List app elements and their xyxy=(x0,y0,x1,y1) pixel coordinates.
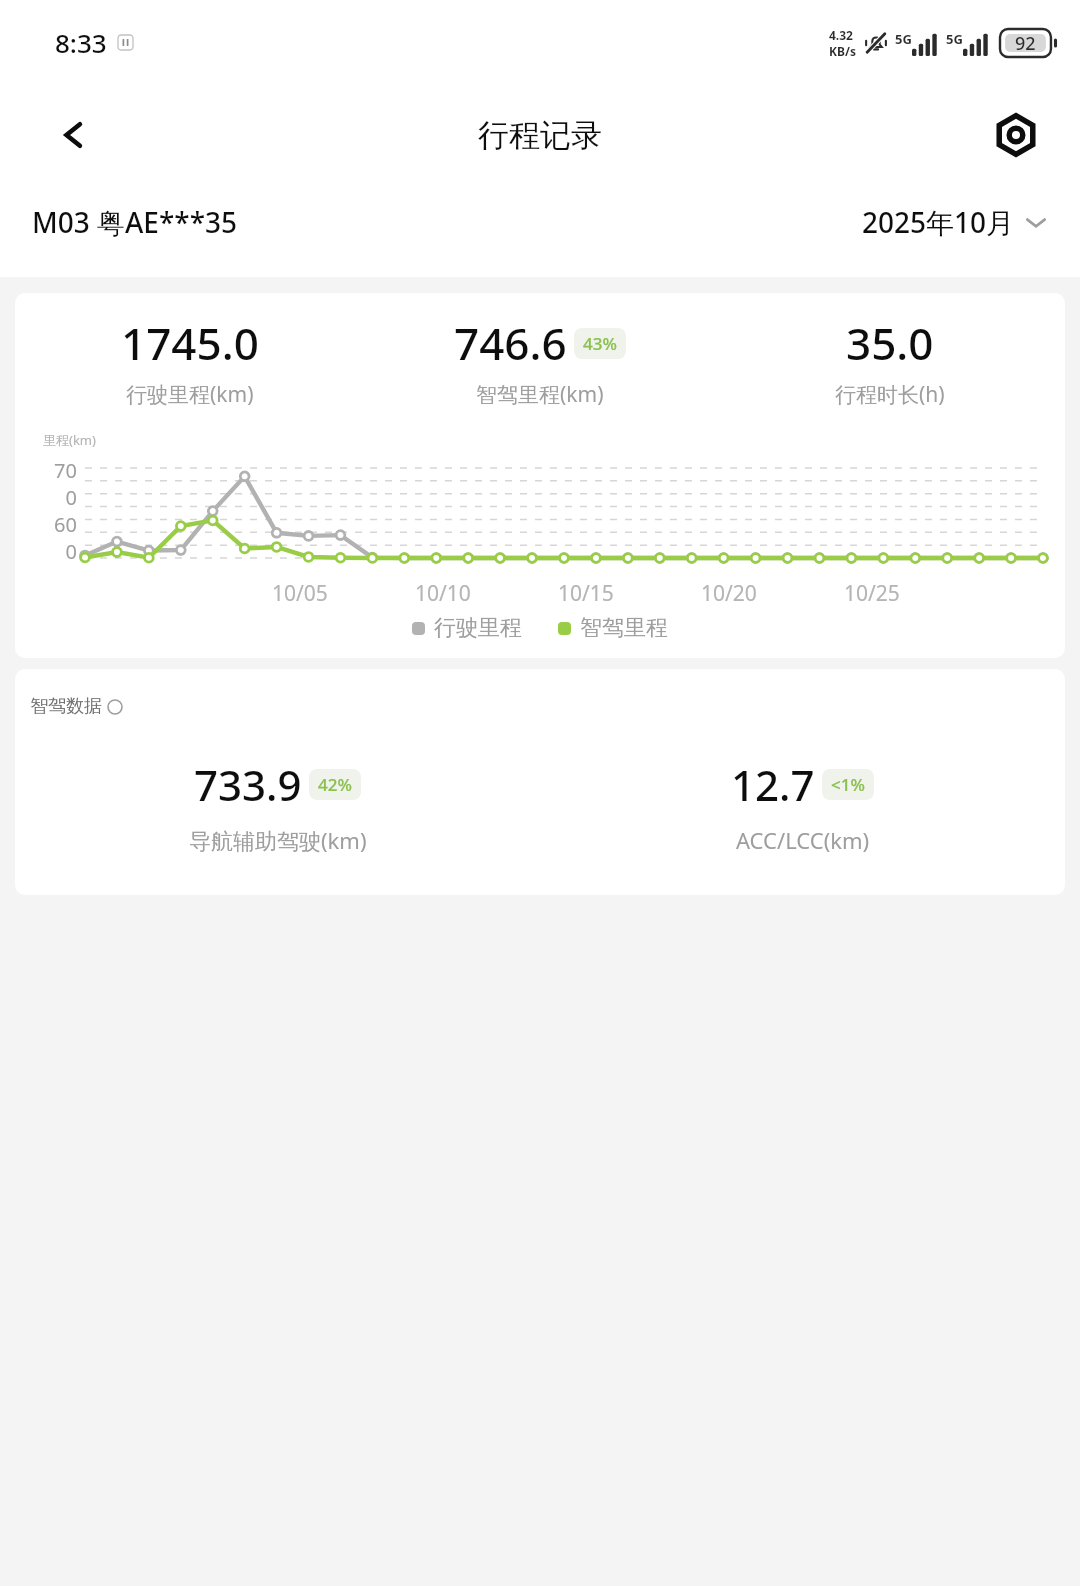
staticText: 行程时长(h) xyxy=(835,380,945,409)
staticText: 智驾里程 xyxy=(580,614,668,642)
staticText: M03 粤AE***35 xyxy=(32,203,238,241)
staticText: 5G xyxy=(946,30,963,48)
staticText: 10/15 xyxy=(558,579,614,608)
button[interactable]: 智驾里程 xyxy=(558,614,668,642)
staticText: 行驶里程(km) xyxy=(126,380,254,409)
staticText: ACC/LCC(km) xyxy=(736,825,870,855)
button[interactable]: 1745.0 xyxy=(15,313,365,409)
staticText: 12.7 xyxy=(731,756,815,813)
button[interactable]: Settings xyxy=(988,107,1044,163)
staticText: 8:33 xyxy=(55,25,107,60)
button[interactable]: 35.0 xyxy=(715,313,1065,409)
button[interactable]: 746.6 xyxy=(365,313,715,409)
button[interactable]: 行驶里程 xyxy=(412,614,522,642)
staticText: 700 xyxy=(43,457,77,511)
staticText: 导航辅助驾驶(km) xyxy=(189,825,367,855)
button[interactable]: 733.9 xyxy=(15,756,540,855)
button[interactable]: 12.7 xyxy=(540,756,1065,855)
staticText: 10/10 xyxy=(415,579,471,608)
staticText: 733.9 xyxy=(194,756,302,813)
staticText: 1745.0 xyxy=(121,313,259,373)
staticText: 行程记录 xyxy=(478,116,602,155)
staticText: 5G xyxy=(895,30,912,48)
button[interactable]: 2025年10月 xyxy=(862,203,1048,241)
staticText: 42% xyxy=(318,773,352,796)
staticText: 智驾数据 xyxy=(30,695,102,718)
staticText: 10/05 xyxy=(272,579,328,608)
staticText: 10/20 xyxy=(701,579,757,608)
staticText: 10/25 xyxy=(844,579,900,608)
staticText: 里程(km) xyxy=(43,431,96,449)
button[interactable]: Back xyxy=(42,107,98,163)
staticText: 43% xyxy=(583,332,617,355)
staticText: 智驾里程(km) xyxy=(476,380,604,409)
other: About assisted driving data xyxy=(107,699,123,715)
button[interactable]: 智驾数据 xyxy=(30,695,123,718)
staticText: 4.32 xyxy=(829,27,853,43)
staticText: <1% xyxy=(831,773,865,796)
staticText: 行驶里程 xyxy=(434,614,522,642)
staticText: 92 xyxy=(1015,31,1036,56)
staticText: 2025年10月 xyxy=(862,203,1015,241)
staticText: 600 xyxy=(43,511,77,565)
staticText: 35.0 xyxy=(846,313,934,373)
staticText: 746.6 xyxy=(454,313,567,373)
staticText: KB/s xyxy=(829,43,856,59)
